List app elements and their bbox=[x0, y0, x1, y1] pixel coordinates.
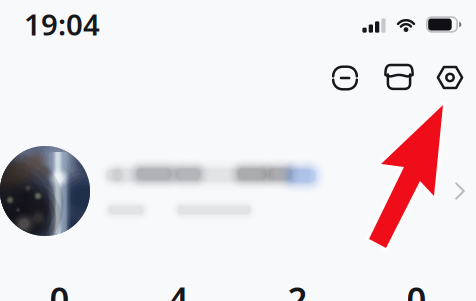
button[interactable]: 0 bbox=[0, 276, 119, 301]
staticText: 2 bbox=[287, 276, 307, 301]
button[interactable]: Shop bbox=[377, 55, 421, 99]
staticText: 0 bbox=[406, 276, 426, 301]
staticText: 4 bbox=[168, 276, 188, 301]
button[interactable]: 4 bbox=[119, 276, 238, 301]
button[interactable]: Threads bbox=[323, 56, 367, 100]
button[interactable]: Settings bbox=[428, 55, 472, 99]
staticText: 19:04 bbox=[24, 4, 100, 43]
button[interactable]: 2 bbox=[238, 276, 357, 301]
staticText: 0 bbox=[49, 276, 69, 301]
button[interactable] bbox=[0, 139, 476, 243]
button[interactable]: 0 bbox=[357, 276, 476, 301]
